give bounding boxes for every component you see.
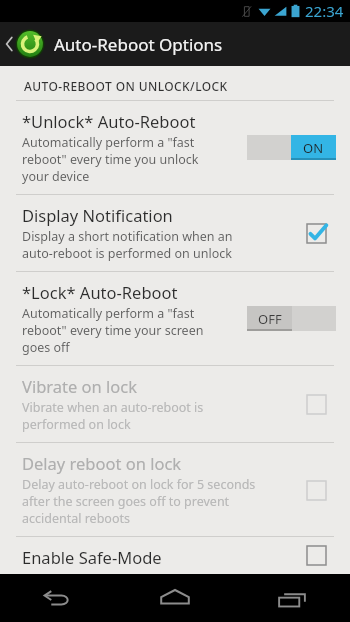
button[interactable]: Vibrate on lock [0, 366, 350, 442]
staticText: *Lock* Auto-Reboot [22, 281, 178, 303]
button[interactable]: Enable Safe-Mode [0, 537, 350, 574]
staticText: Delay reboot on lock [22, 452, 182, 474]
button[interactable]: Checked [296, 213, 336, 253]
staticText: ON [303, 139, 324, 157]
button[interactable]: Home [116, 574, 233, 622]
button[interactable]: Back [0, 574, 116, 622]
button[interactable]: Toggle on [247, 135, 336, 160]
button[interactable]: *Unlock* Auto-Reboot [0, 101, 350, 194]
staticText: Vibrate when an auto-reboot is performed… [22, 399, 204, 433]
staticText: *Unlock* Auto-Reboot [22, 110, 196, 132]
button[interactable]: Unchecked [296, 384, 336, 424]
button[interactable]: Toggle off [247, 306, 336, 331]
button[interactable]: *Lock* Auto-Reboot [0, 272, 350, 365]
staticText: Enable Safe-Mode [22, 546, 162, 565]
button[interactable]: Display Notification [0, 195, 350, 271]
button[interactable]: Unchecked [296, 546, 336, 565]
staticText: 22:34 [305, 1, 344, 21]
button[interactable]: Recent apps [233, 574, 350, 622]
staticText: Automatically perform a "fast reboot" ev… [22, 305, 204, 356]
button[interactable]: Back [0, 29, 229, 59]
button[interactable]: Unchecked [296, 470, 336, 510]
button[interactable]: Delay reboot on lock [0, 443, 350, 536]
staticText: Vibrate on lock [22, 375, 138, 397]
staticText: OFF [258, 310, 282, 328]
staticText: Auto-Reboot Options [54, 33, 223, 56]
staticText: AUTO-REBOOT ON UNLOCK/LOCK [24, 78, 228, 94]
staticText: Automatically perform a "fast reboot" ev… [22, 134, 199, 185]
staticText: Display a short notification when an aut… [22, 228, 233, 262]
staticText: Display Notification [22, 204, 173, 226]
staticText: Delay auto-reboot on lock for 5 seconds … [22, 476, 256, 527]
